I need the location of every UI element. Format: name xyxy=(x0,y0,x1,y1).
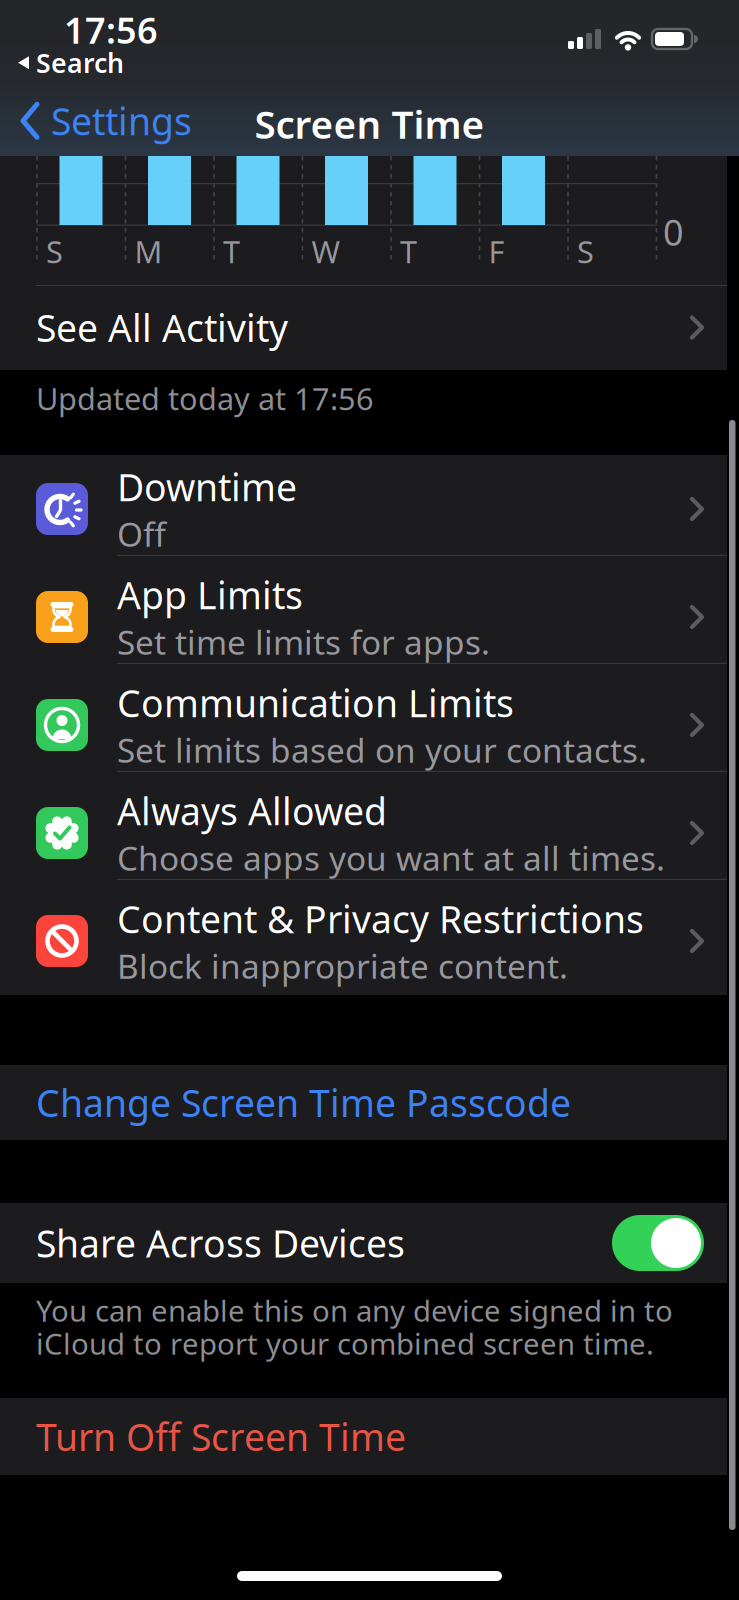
staticText: Change Screen Time Passcode xyxy=(36,1078,571,1127)
staticText: Choose apps you want at all times. xyxy=(117,836,665,880)
button[interactable]: Content & Privacy Restrictions xyxy=(0,887,727,995)
staticText: You can enable this on any device signed… xyxy=(36,1291,673,1363)
staticText: Turn Off Screen Time xyxy=(36,1412,406,1461)
staticText: 17:56 xyxy=(64,6,158,54)
staticText: S xyxy=(577,231,594,272)
button[interactable]: Communication Limits xyxy=(0,671,727,779)
staticText: Content & Privacy Restrictions xyxy=(117,894,644,944)
staticText: See All Activity xyxy=(36,303,288,352)
staticText: Set limits based on your contacts. xyxy=(117,728,647,772)
staticText: Communication Limits xyxy=(117,678,514,728)
button[interactable]: Turn Off Screen Time xyxy=(0,1398,727,1475)
staticText: S xyxy=(46,231,63,272)
staticText: Screen Time xyxy=(254,98,484,149)
staticText: F xyxy=(488,231,504,272)
button[interactable]: Always Allowed xyxy=(0,779,727,887)
staticText: T xyxy=(400,231,417,272)
staticText: W xyxy=(311,231,340,272)
staticText: Search xyxy=(36,45,124,80)
staticText: T xyxy=(223,231,240,272)
staticText: Set time limits for apps. xyxy=(117,620,490,664)
staticText: Always Allowed xyxy=(117,786,387,836)
button[interactable]: Share Across Devices xyxy=(612,1215,704,1271)
staticText: 0 xyxy=(663,208,684,256)
staticText: Block inappropriate content. xyxy=(117,944,568,988)
staticText: M xyxy=(134,231,162,272)
staticText: Off xyxy=(117,512,166,556)
staticText: Downtime xyxy=(117,462,297,512)
button[interactable]: Back to Settings xyxy=(20,96,192,146)
staticText: Updated today at 17:56 xyxy=(36,378,374,419)
staticText: App Limits xyxy=(117,570,303,620)
staticText: Settings xyxy=(51,96,192,146)
staticText: Share Across Devices xyxy=(36,1218,405,1268)
button[interactable]: App Limits xyxy=(0,563,727,671)
button[interactable]: Change Screen Time Passcode xyxy=(0,1065,727,1140)
button[interactable]: See All Activity xyxy=(0,285,727,370)
button[interactable]: Downtime xyxy=(0,455,727,563)
